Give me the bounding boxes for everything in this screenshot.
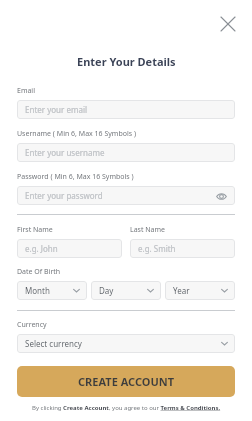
staticText: Month bbox=[25, 285, 50, 296]
button[interactable]: Show password bbox=[215, 190, 227, 202]
button[interactable]: Day bbox=[91, 281, 161, 300]
button[interactable]: Enter your email bbox=[17, 100, 235, 119]
staticText: Password ( Min 6, Max 16 Symbols ) bbox=[17, 172, 134, 182]
button[interactable]: Month bbox=[17, 281, 87, 300]
staticText: Last Name bbox=[130, 225, 166, 235]
button[interactable]: e.g. Smith bbox=[130, 239, 235, 258]
staticText: First Name bbox=[17, 225, 53, 235]
staticText: Username ( Min 6, Max 16 Symbols ) bbox=[17, 129, 136, 139]
staticText: Email bbox=[17, 86, 35, 96]
button[interactable]: Year bbox=[165, 281, 235, 300]
staticText: e.g. Smith bbox=[138, 243, 176, 254]
staticText: Currency bbox=[17, 320, 47, 330]
button[interactable]: CREATE ACCOUNT bbox=[17, 366, 235, 397]
staticText: By clicking Create Account, you agree to… bbox=[32, 404, 221, 412]
staticText: Date Of Birth bbox=[17, 267, 61, 277]
staticText: Year bbox=[173, 285, 190, 296]
button[interactable]: e.g. John bbox=[17, 239, 122, 258]
staticText: Enter your email bbox=[25, 104, 88, 115]
button[interactable]: Close bbox=[218, 14, 238, 34]
staticText: CREATE ACCOUNT bbox=[78, 374, 175, 389]
button[interactable]: Enter your username bbox=[17, 143, 235, 162]
staticText: Enter Your Details bbox=[77, 54, 176, 69]
staticText: Enter your password bbox=[25, 190, 103, 201]
button[interactable]: Enter your password bbox=[17, 186, 235, 205]
staticText: Enter your username bbox=[25, 147, 105, 158]
staticText: Day bbox=[99, 285, 114, 296]
staticText: Select currency bbox=[25, 338, 82, 349]
staticText: e.g. John bbox=[25, 243, 58, 254]
button[interactable]: Select currency bbox=[17, 334, 235, 353]
